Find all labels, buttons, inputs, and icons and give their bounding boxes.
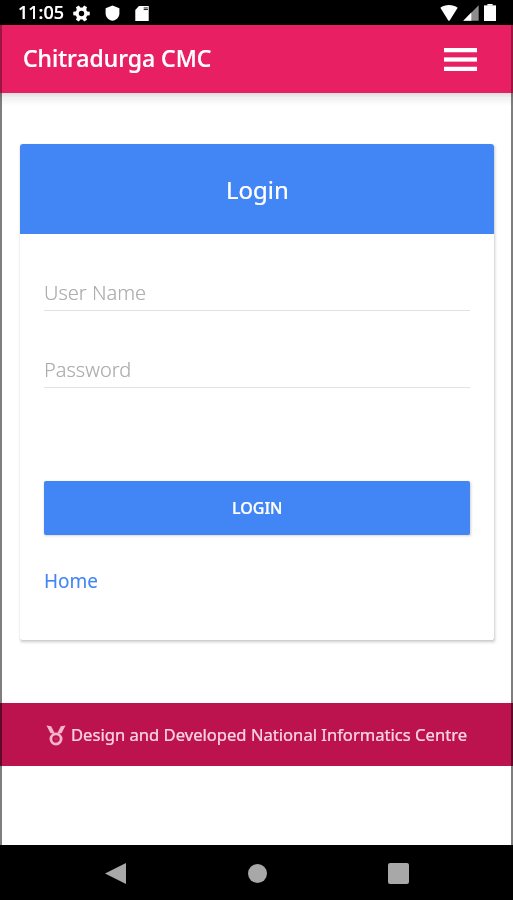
staticText: Login [226, 173, 289, 206]
staticText: Password [44, 356, 132, 383]
button[interactable]: Menu [437, 36, 483, 82]
staticText: User Name [44, 279, 147, 306]
staticText: 11:05 [18, 0, 65, 25]
staticText: LOGIN [232, 497, 283, 519]
button[interactable]: Recent apps [372, 847, 424, 899]
button[interactable]: Back [89, 847, 141, 899]
staticText: Home [44, 568, 99, 594]
button[interactable]: LOGIN [44, 481, 470, 535]
staticText: Chitradurga CMC [23, 42, 212, 73]
staticText: Design and Developed National Informatic… [71, 723, 468, 746]
button[interactable]: Home [231, 847, 283, 899]
button[interactable]: Home [44, 568, 99, 594]
